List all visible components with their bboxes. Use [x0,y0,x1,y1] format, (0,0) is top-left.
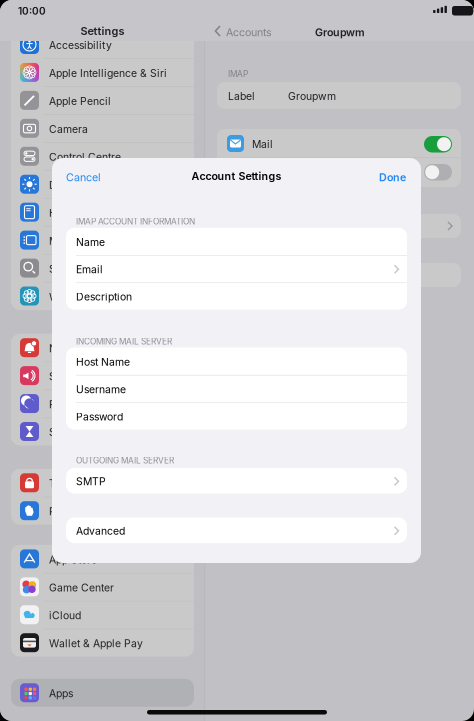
staticText: 10:00 [18,5,46,17]
staticText: Password [76,410,123,423]
button[interactable]: iCloud [11,601,194,629]
button[interactable]: Done [371,163,415,187]
button[interactable]: Apple Intelligence & Siri [11,58,194,86]
staticText: Notifications [49,342,111,355]
button[interactable]: Apple Pencil [11,86,194,114]
staticText: Name [76,236,105,249]
staticText: Sounds [49,370,85,383]
button[interactable]: Touch ID & Passcode [11,469,194,497]
button[interactable]: Notes off [424,164,452,180]
button[interactable]: Password [66,402,407,430]
staticText: Email [76,263,103,276]
staticText: SMTP [76,475,106,488]
button[interactable]: Accessibility [11,30,194,58]
staticText: Multitasking & Gestures [49,235,164,247]
staticText: Apple Intelligence & Siri [49,67,167,79]
button[interactable]: SMTP [66,468,407,494]
button[interactable]: Accounts [214,21,276,41]
staticText: Display & Brightness [49,179,150,191]
staticText: Game Center [49,581,114,594]
staticText: App Store [49,553,97,566]
button[interactable]: Description [66,282,407,310]
button[interactable]: Focus [11,390,194,417]
button[interactable]: Host Name [66,347,407,375]
staticText: Search [49,263,84,275]
staticText: Apps [49,687,73,700]
button[interactable]: Sounds [11,362,194,389]
button[interactable]: Display & Brightness [11,170,194,198]
staticText: Label [228,90,255,103]
staticText: Settings [80,24,124,38]
staticText: IMAP ACCOUNT INFORMATION [76,216,195,226]
button[interactable]: App Store [11,545,194,573]
button[interactable]: Control Centre [11,142,194,170]
staticText: Groupwm [288,90,336,103]
staticText: Accessibility [49,39,112,52]
staticText: Privacy & Security [49,505,142,518]
staticText: Accounts [226,26,272,39]
staticText: Advanced [76,525,125,537]
staticText: Mail [252,138,273,151]
staticText: Groupwm [315,26,365,39]
button[interactable]: Game Center [11,573,194,601]
staticText: Description [76,291,132,303]
staticText: Done [379,171,406,184]
button[interactable]: Wallet & Apple Pay [11,629,194,657]
staticText: Cancel [66,171,101,184]
button[interactable]: Multitasking & Gestures [11,226,194,254]
button[interactable]: Name [66,228,407,255]
button[interactable]: Username [66,375,407,402]
button[interactable]: Wallpaper [11,282,194,310]
staticText: Camera [49,123,88,135]
staticText: Wallpaper [49,290,99,303]
button[interactable]: Screen Time [11,417,194,445]
button[interactable]: Search [11,254,194,282]
button[interactable]: Camera [11,114,194,142]
staticText: Account Settings [191,169,281,182]
button[interactable]: Notifications [11,334,194,362]
button[interactable]: Privacy & Security [11,497,194,525]
button[interactable]: Email [66,255,407,282]
staticText: Control Centre [49,151,121,163]
staticText: Apple Pencil [49,95,111,107]
button[interactable]: Advanced [66,517,407,543]
staticText: OUTGOING MAIL SERVER [76,455,174,465]
button[interactable]: Home Screen & App Library [11,198,194,226]
staticText: Username [76,383,126,396]
staticText: Wallet & Apple Pay [49,637,143,650]
staticText: INCOMING MAIL SERVER [76,336,172,346]
staticText: Screen Time [49,426,112,439]
staticText: Host Name [76,356,130,368]
button[interactable]: Mail on [424,136,452,152]
staticText: iCloud [49,609,81,622]
staticText: IMAP [228,69,248,79]
button[interactable]: Cancel [58,163,106,187]
staticText: Focus [49,398,78,411]
button[interactable]: Apps [11,679,194,707]
staticText: Touch ID & Passcode [49,477,153,490]
staticText: Home Screen & App Library [49,207,186,219]
